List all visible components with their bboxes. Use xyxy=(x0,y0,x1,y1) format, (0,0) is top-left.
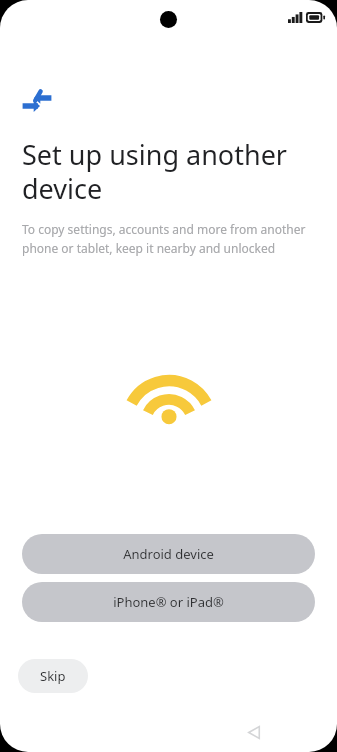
button[interactable]: iPhone® or iPad® xyxy=(22,582,315,622)
button[interactable]: Android device xyxy=(22,534,315,574)
staticText: iPhone® or iPad® xyxy=(113,593,224,611)
staticText: To copy settings, accounts and more from… xyxy=(22,221,315,256)
staticText: Set up using another device xyxy=(22,136,315,207)
staticText: Android device xyxy=(123,545,214,563)
button[interactable]: Back xyxy=(237,715,271,749)
staticText: Skip xyxy=(40,667,66,685)
button[interactable]: Skip xyxy=(18,659,88,693)
